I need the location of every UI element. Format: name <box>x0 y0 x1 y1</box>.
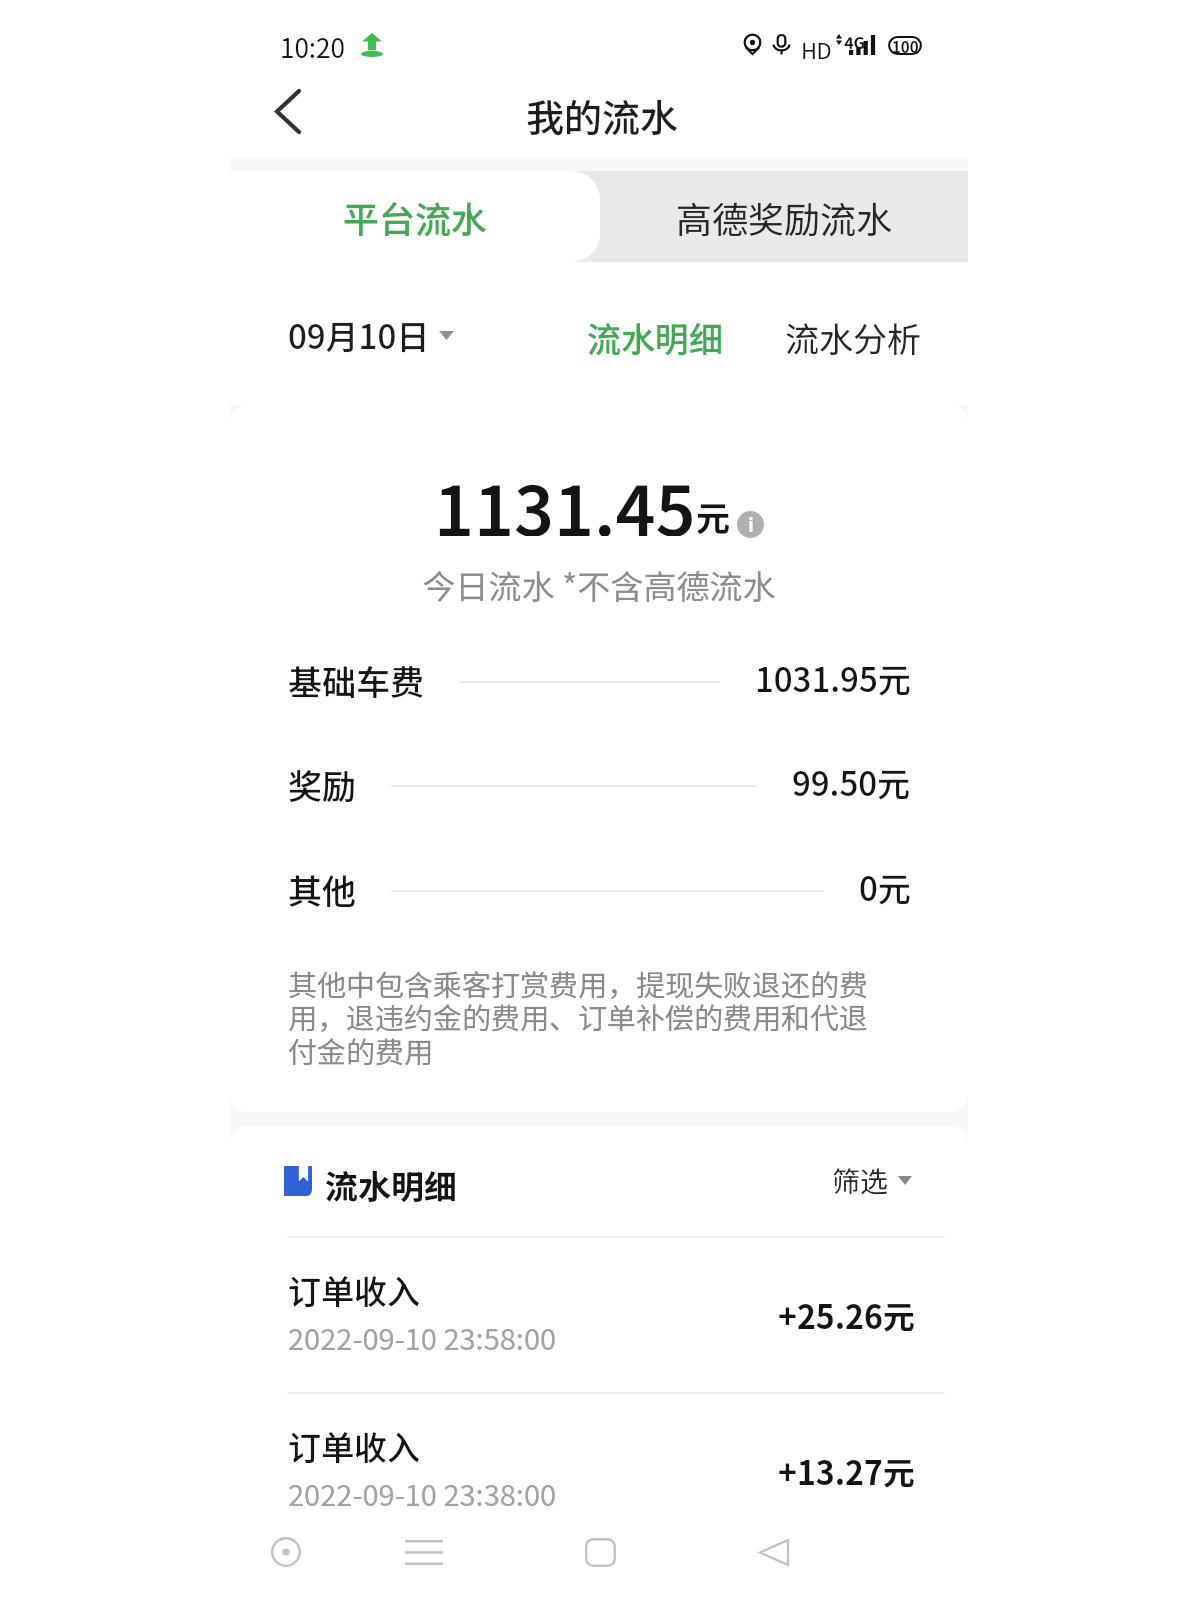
staticText: HD <box>801 33 831 65</box>
staticText: 100 <box>892 36 919 55</box>
button[interactable]: Back <box>252 76 324 146</box>
staticText: 1131.45 <box>434 456 696 536</box>
staticText: 筛选 <box>832 1160 889 1201</box>
staticText: 我的流水 <box>526 88 679 143</box>
staticText: 流水分析 <box>785 313 921 362</box>
button[interactable]: 平台流水 <box>230 171 600 262</box>
staticText: 奖励 <box>288 760 356 809</box>
staticText: 元 <box>696 492 730 541</box>
button[interactable] <box>230 1236 968 1386</box>
staticText: 订单收入 <box>288 1266 420 1312</box>
staticText: 4G <box>844 30 865 53</box>
staticText: 流水明细 <box>325 1161 457 1203</box>
staticText: 平台流水 <box>343 191 488 243</box>
staticText: 高德奖励流水 <box>676 191 893 243</box>
staticText: 基础车费 <box>288 656 424 705</box>
button[interactable]: 筛选 <box>832 1160 912 1201</box>
staticText: +13.27元 <box>778 1448 915 1494</box>
button[interactable]: 09月10日 <box>288 308 454 362</box>
button[interactable]: Assistant <box>253 1519 319 1585</box>
staticText: 99.50元 <box>792 758 911 806</box>
staticText: 2022-09-10 23:38:00 <box>288 1472 557 1512</box>
staticText: 其他 <box>288 865 356 914</box>
staticText: 今日流水 *不含高德流水 <box>230 561 968 609</box>
staticText: 2022-09-10 23:58:00 <box>288 1316 557 1356</box>
button[interactable] <box>230 1392 968 1542</box>
staticText: 其他中包含乘客打赏费用，提现失败退还的费用，退违约金的费用、订单补偿的费用和代退… <box>288 962 890 1072</box>
staticText: 1031.95元 <box>755 654 911 702</box>
staticText: i <box>748 511 754 537</box>
button[interactable]: 流水明细 <box>587 309 723 365</box>
staticText: 流水明细 <box>587 313 723 362</box>
staticText: +25.26元 <box>778 1292 915 1338</box>
button[interactable]: Menu <box>391 1519 457 1585</box>
button[interactable]: Home <box>567 1519 633 1585</box>
button[interactable]: Info <box>737 511 764 538</box>
staticText: 0元 <box>859 863 911 911</box>
button[interactable]: 高德奖励流水 <box>600 171 968 262</box>
button[interactable]: Back <box>741 1519 807 1585</box>
button[interactable]: 流水分析 <box>785 309 921 365</box>
staticText: 10:20 <box>280 28 345 66</box>
staticText: 09月10日 <box>288 311 430 359</box>
staticText: 订单收入 <box>288 1422 420 1468</box>
